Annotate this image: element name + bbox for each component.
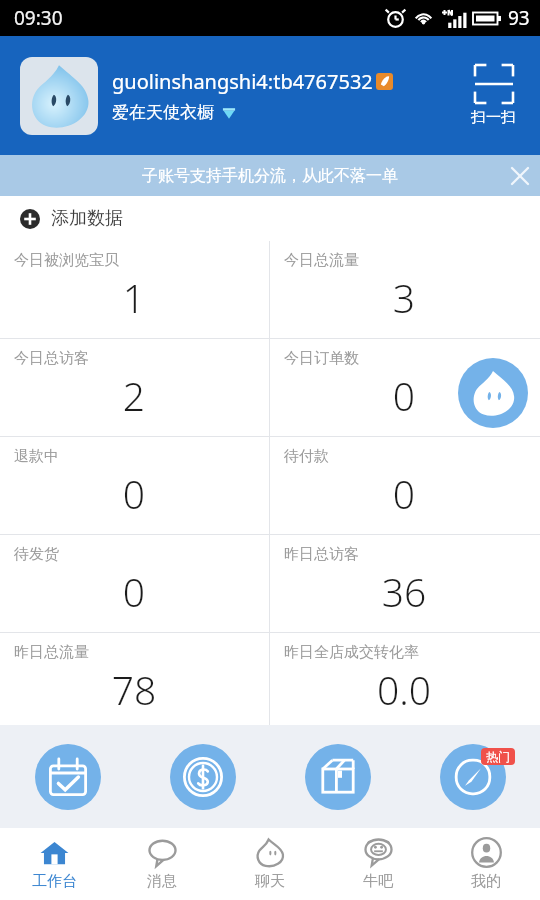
staticText: 0 bbox=[284, 369, 524, 422]
button[interactable]: 退款中 bbox=[0, 437, 269, 534]
button[interactable]: 添加数据 bbox=[0, 196, 540, 241]
button[interactable]: 今日被浏览宝贝 bbox=[0, 241, 269, 338]
button[interactable]: Finance bbox=[170, 744, 236, 810]
staticText: 3 bbox=[284, 271, 524, 324]
button[interactable]: 昨日总访客 bbox=[270, 535, 540, 632]
staticText: 牛吧 bbox=[363, 872, 393, 891]
staticText: 今日被浏览宝贝 bbox=[14, 251, 119, 270]
staticText: 昨日总流量 bbox=[14, 643, 89, 662]
staticText: 2 bbox=[14, 369, 254, 422]
button[interactable]: 聊天 bbox=[216, 828, 324, 900]
staticText: 扫一扫 bbox=[471, 108, 516, 127]
staticText: 09:30 bbox=[14, 5, 63, 31]
staticText: 今日总流量 bbox=[284, 251, 359, 270]
button[interactable]: 牛吧 bbox=[324, 828, 432, 900]
button[interactable]: 消息 bbox=[108, 828, 216, 900]
staticText: 爱在天使衣橱 bbox=[112, 102, 214, 123]
staticText: 今日总访客 bbox=[14, 349, 89, 368]
button[interactable]: 待发货 bbox=[0, 535, 269, 632]
staticText: 待付款 bbox=[284, 447, 329, 466]
staticText: 36 bbox=[284, 565, 524, 618]
staticText: 子账号支持手机分流，从此不落一单 bbox=[142, 166, 398, 186]
staticText: 93 bbox=[508, 5, 530, 31]
staticText: 我的 bbox=[471, 872, 501, 891]
button[interactable]: Tasks bbox=[35, 744, 101, 810]
staticText: 待发货 bbox=[14, 545, 59, 564]
button[interactable]: 工作台 bbox=[0, 828, 108, 900]
button[interactable]: 今日总流量 bbox=[270, 241, 540, 338]
staticText: 今日订单数 bbox=[284, 349, 359, 368]
staticText: 热门 bbox=[486, 749, 510, 764]
button[interactable]: Scan bbox=[467, 61, 520, 131]
staticText: 消息 bbox=[147, 872, 177, 891]
staticText: 1 bbox=[14, 271, 254, 324]
staticText: guolinshangshi4:tb4767532 bbox=[112, 68, 373, 95]
staticText: 退款中 bbox=[14, 447, 59, 466]
staticText: 0.0 bbox=[284, 663, 524, 716]
button[interactable]: 待付款 bbox=[270, 437, 540, 534]
button[interactable]: Shipping bbox=[305, 744, 371, 810]
button[interactable]: Dashboard bbox=[440, 744, 506, 810]
button[interactable]: 今日总访客 bbox=[0, 339, 269, 436]
button[interactable]: 昨日全店成交转化率 bbox=[270, 633, 540, 725]
staticText: 0 bbox=[14, 565, 254, 618]
button[interactable]: Avatar bbox=[20, 57, 98, 135]
button[interactable]: Assistant bbox=[458, 358, 528, 428]
staticText: 78 bbox=[14, 663, 254, 716]
staticText: 0 bbox=[284, 467, 524, 520]
button[interactable]: 今日订单数 bbox=[270, 339, 540, 436]
button[interactable]: Close bbox=[499, 155, 540, 196]
button[interactable]: 昨日总流量 bbox=[0, 633, 269, 725]
staticText: 工作台 bbox=[32, 872, 77, 891]
staticText: 聊天 bbox=[255, 872, 285, 891]
staticText: 昨日总访客 bbox=[284, 545, 359, 564]
staticText: 添加数据 bbox=[51, 207, 123, 230]
staticText: 0 bbox=[14, 467, 254, 520]
button[interactable]: 我的 bbox=[432, 828, 540, 900]
staticText: 昨日全店成交转化率 bbox=[284, 643, 419, 662]
